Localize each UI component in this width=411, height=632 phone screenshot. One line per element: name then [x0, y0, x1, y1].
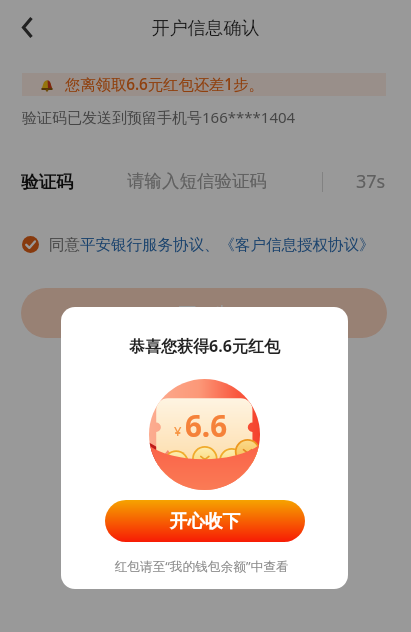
- staticText: 开心收下: [170, 510, 240, 532]
- staticText: 开户信息确认: [0, 17, 411, 40]
- staticText: 恭喜您获得6.6元红包: [61, 335, 348, 357]
- staticText: 红包请至“我的钱包余额”中查看: [61, 557, 345, 574]
- staticText: 37s: [356, 169, 386, 194]
- button[interactable]: 同意平安银行服务协议、《客户信息授权协议》: [22, 235, 375, 254]
- staticText: 验证码: [21, 171, 74, 193]
- staticText: 您离领取6.6元红包还差1步。: [65, 74, 264, 95]
- staticText: 下一步: [179, 303, 230, 324]
- staticText: ¥: [174, 422, 182, 440]
- button[interactable]: 开心收下: [105, 500, 305, 542]
- staticText: 6.6: [185, 405, 228, 445]
- staticText: 同意平安银行服务协议、《客户信息授权协议》: [49, 235, 375, 254]
- staticText: 请输入短信验证码: [127, 170, 267, 192]
- button[interactable]: Back: [7, 7, 48, 48]
- button[interactable]: 下一步: [21, 288, 387, 338]
- staticText: 验证码已发送到预留手机号166****1404: [22, 107, 296, 127]
